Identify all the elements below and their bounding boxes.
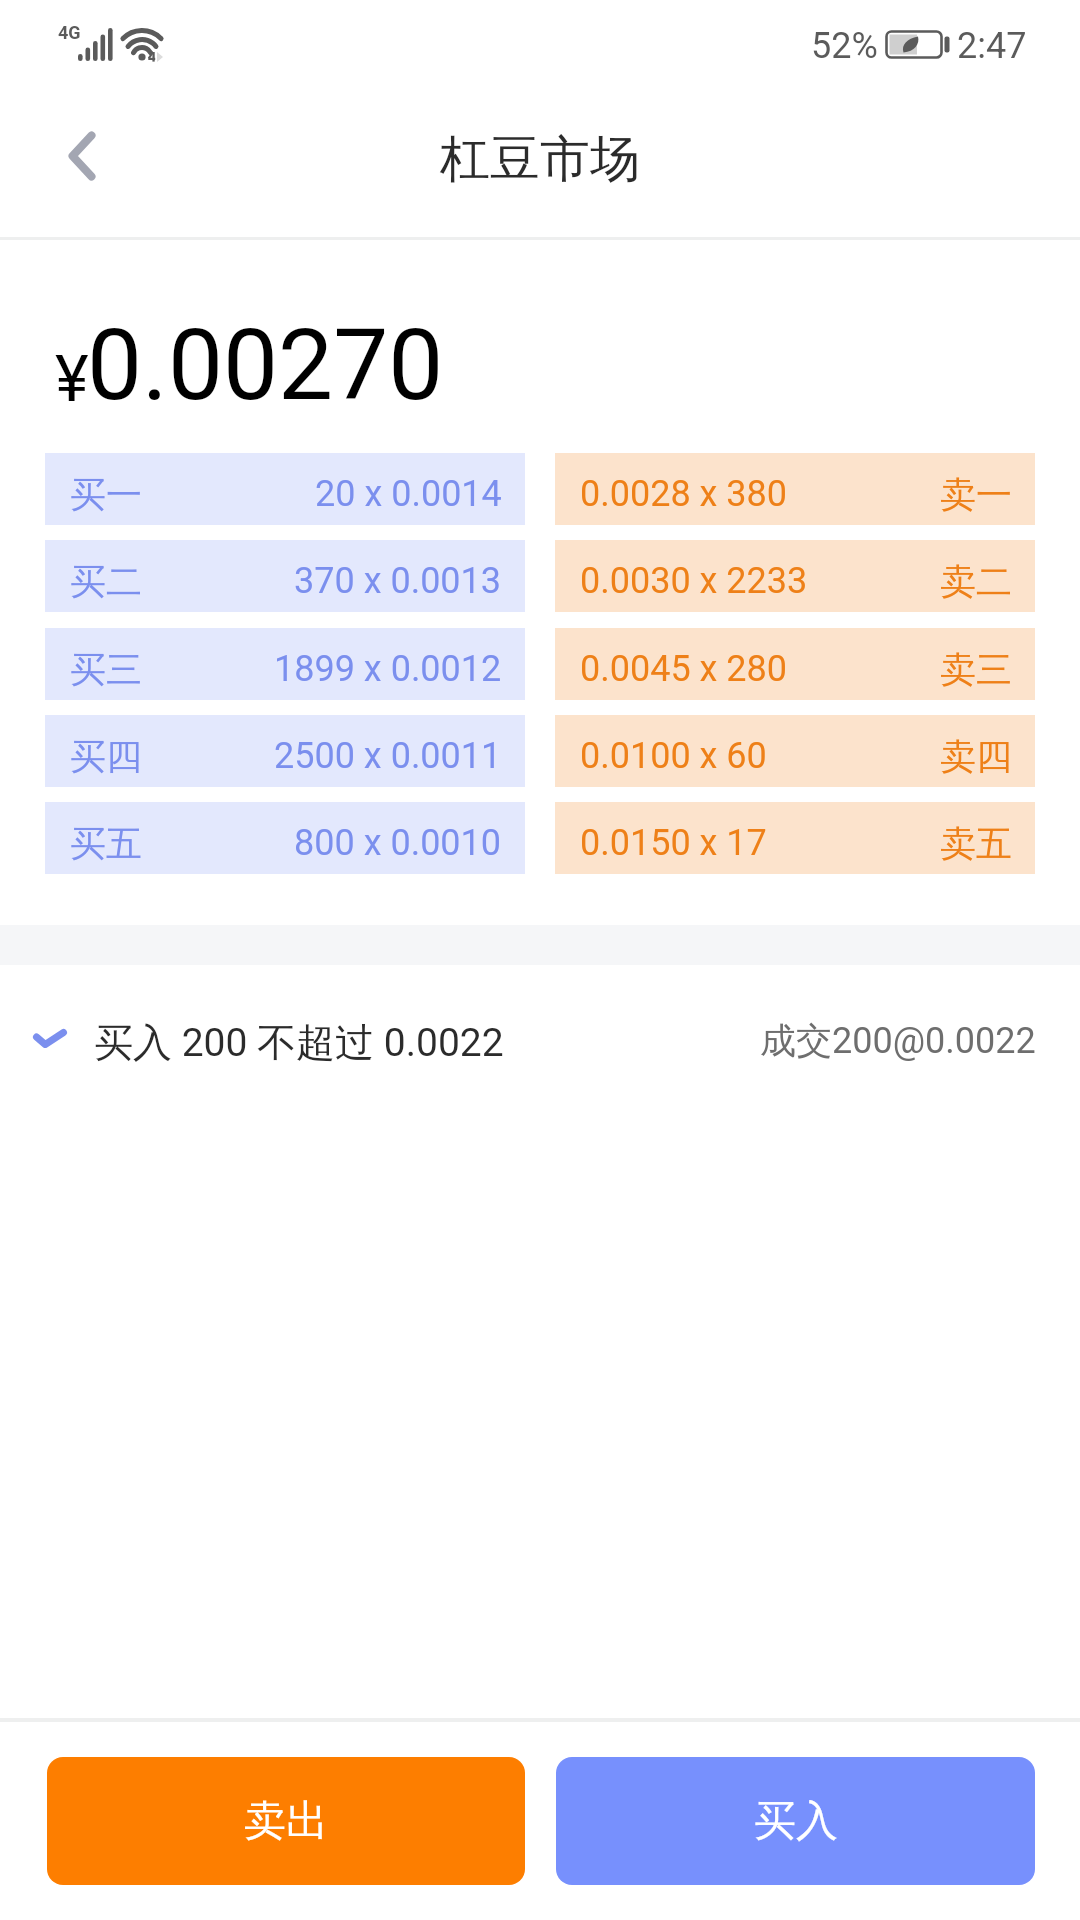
- staticText: 买三: [70, 647, 142, 692]
- staticText: 2:47: [957, 25, 1027, 67]
- staticText: 370 x 0.0013: [294, 560, 502, 602]
- staticText: 4G: [58, 22, 81, 43]
- staticText: 卖出: [244, 1795, 328, 1848]
- button[interactable]: 买一: [45, 453, 525, 525]
- staticText: 0.0100 x 60: [580, 735, 767, 777]
- staticText: 买一: [70, 472, 142, 517]
- button[interactable]: 0.0045 x 280: [555, 628, 1035, 700]
- staticText: 买二: [70, 559, 142, 604]
- button[interactable]: 0.0030 x 2233: [555, 540, 1035, 612]
- staticText: 1899 x 0.0012: [274, 648, 502, 690]
- staticText: 买五: [70, 821, 142, 866]
- staticText: 20 x 0.0014: [315, 473, 502, 515]
- staticText: 0.0150 x 17: [580, 822, 767, 864]
- staticText: 0.0030 x 2233: [580, 560, 808, 602]
- staticText: 800 x 0.0010: [294, 822, 502, 864]
- staticText: 买入: [754, 1795, 838, 1848]
- staticText: 卖四: [940, 734, 1012, 779]
- staticText: 2500 x 0.0011: [274, 735, 502, 777]
- staticText: 卖一: [940, 472, 1012, 517]
- button[interactable]: 买四: [45, 715, 525, 787]
- staticText: 卖二: [940, 559, 1012, 604]
- staticText: 成交200@0.0022: [760, 1018, 1036, 1063]
- button[interactable]: 买三: [45, 628, 525, 700]
- staticText: 买入 200 不超过 0.0022: [94, 1018, 504, 1067]
- staticText: 卖五: [940, 821, 1012, 866]
- button[interactable]: 买二: [45, 540, 525, 612]
- button[interactable]: 0.0100 x 60: [555, 715, 1035, 787]
- staticText: 0.00270: [87, 308, 444, 418]
- staticText: 买四: [70, 734, 142, 779]
- staticText: ¥: [55, 342, 89, 417]
- button[interactable]: 买入: [556, 1757, 1035, 1885]
- button[interactable]: 买五: [45, 802, 525, 874]
- staticText: 52%: [811, 25, 878, 67]
- button[interactable]: 买入 200 不超过 0.0022: [0, 965, 1080, 1117]
- button[interactable]: 0.0028 x 380: [555, 453, 1035, 525]
- staticText: 杠豆市场: [440, 128, 640, 191]
- staticText: 0.0045 x 280: [580, 648, 788, 690]
- button[interactable]: Back: [22, 101, 142, 211]
- staticText: 0.0028 x 380: [580, 473, 788, 515]
- button[interactable]: 0.0150 x 17: [555, 802, 1035, 874]
- staticText: 卖三: [940, 647, 1012, 692]
- button[interactable]: 卖出: [47, 1757, 525, 1885]
